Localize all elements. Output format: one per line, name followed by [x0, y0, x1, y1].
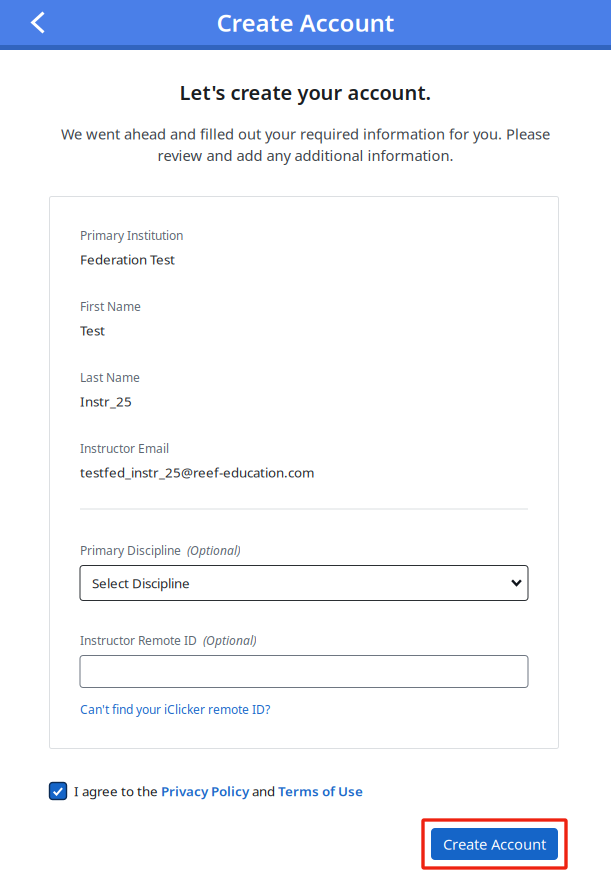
staticText: Last Name [80, 369, 140, 385]
button[interactable]: Select Discipline [80, 565, 528, 600]
staticText: Select Discipline [92, 574, 190, 592]
staticText: Instr_25 [80, 392, 132, 410]
button[interactable]: Back [8, 0, 68, 45]
button[interactable]: Create Account [423, 820, 566, 868]
staticText: First Name [80, 298, 141, 314]
staticText: Primary Discipline [80, 542, 181, 558]
staticText: I agree to the [74, 782, 161, 800]
staticText: Let's create your account. [179, 79, 431, 106]
staticText: Instructor Remote ID [80, 632, 197, 648]
staticText: Privacy Policy [161, 782, 249, 800]
staticText: Can't find your iClicker remote ID? [80, 701, 270, 717]
staticText: review and add any additional informatio… [157, 145, 453, 165]
button[interactable]: Privacy Policy [161, 782, 249, 800]
staticText: (Optional) [187, 542, 240, 558]
button[interactable]: Can't find your iClicker remote ID? [80, 701, 270, 717]
staticText: and [249, 782, 278, 800]
staticText: Federation Test [80, 250, 175, 268]
button[interactable]: I agree to the Privacy Policy and Terms … [49, 782, 67, 800]
staticText: testfed_instr_25@reef-education.com [80, 463, 314, 481]
button[interactable]: Instructor Remote ID [80, 655, 528, 687]
staticText: (Optional) [203, 632, 256, 648]
button[interactable]: Terms of Use [278, 782, 363, 800]
staticText: We went ahead and filled out your requir… [61, 124, 550, 143]
staticText: Create Account [216, 7, 394, 38]
staticText: Create Account [443, 834, 546, 854]
staticText: Terms of Use [278, 782, 363, 800]
staticText: Instructor Email [80, 440, 169, 456]
staticText: Primary Institution [80, 227, 183, 243]
staticText: Test [80, 321, 105, 339]
